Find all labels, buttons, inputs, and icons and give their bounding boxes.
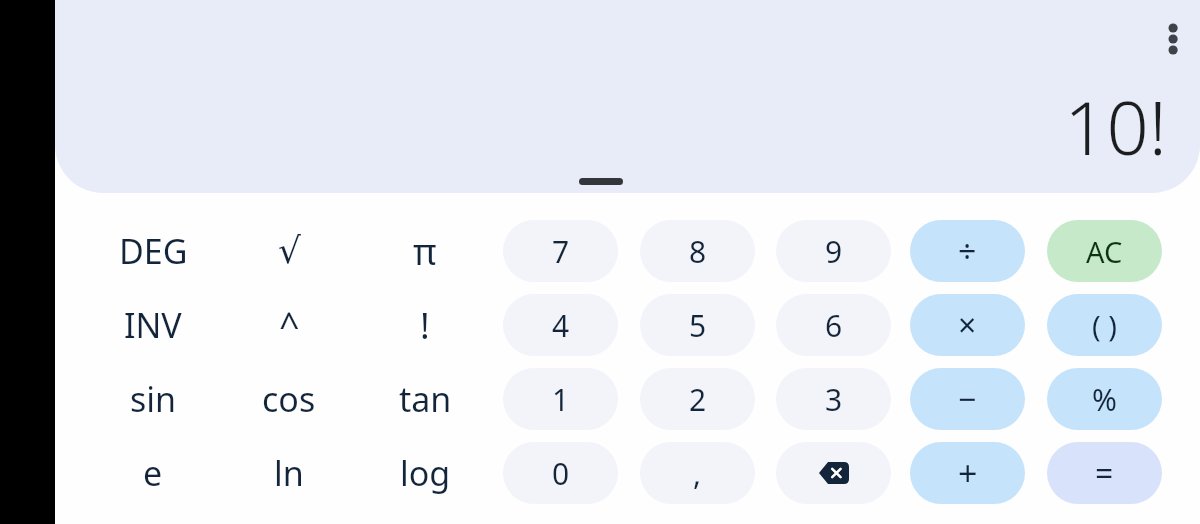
staticText: e xyxy=(143,450,163,496)
staticText: tan xyxy=(399,376,452,422)
staticText: 8 xyxy=(689,231,707,272)
button[interactable]: DEG xyxy=(96,220,210,282)
button[interactable]: tan xyxy=(368,368,482,430)
staticText: 2 xyxy=(689,379,707,420)
staticText: ln xyxy=(274,450,304,496)
staticText: % xyxy=(1092,379,1117,420)
staticText: AC xyxy=(1086,232,1123,271)
staticText: 3 xyxy=(825,379,843,420)
button[interactable]: Backspace xyxy=(776,442,891,504)
button[interactable]: INV xyxy=(96,294,210,356)
button[interactable]: = xyxy=(1047,442,1162,504)
button[interactable]: ÷ xyxy=(910,220,1025,282)
staticText: ( ) xyxy=(1092,306,1117,345)
button[interactable]: Drag handle xyxy=(579,178,623,185)
button[interactable]: sin xyxy=(96,368,210,430)
button[interactable]: ! xyxy=(368,294,482,356)
button[interactable]: 3 xyxy=(776,368,891,430)
staticText: ÷ xyxy=(958,229,977,273)
button[interactable]: √ xyxy=(232,220,346,282)
button[interactable]: , xyxy=(640,442,755,504)
button[interactable]: 6 xyxy=(776,294,891,356)
button[interactable]: 9 xyxy=(776,220,891,282)
button[interactable]: 0 xyxy=(503,442,618,504)
button[interactable]: ( ) xyxy=(1047,294,1162,356)
button[interactable]: 4 xyxy=(503,294,618,356)
button[interactable]: % xyxy=(1047,368,1162,430)
staticText: 7 xyxy=(552,231,570,272)
button[interactable]: More options xyxy=(1142,8,1198,64)
staticText: cos xyxy=(262,376,316,422)
staticText: 10! xyxy=(1064,76,1167,177)
staticText: DEG xyxy=(119,228,188,274)
button[interactable]: π xyxy=(368,220,482,282)
staticText: − xyxy=(958,377,977,421)
staticText: √ xyxy=(278,230,301,272)
button[interactable]: + xyxy=(910,442,1025,504)
button[interactable]: ^ xyxy=(232,294,346,356)
button[interactable]: e xyxy=(96,442,210,504)
staticText: , xyxy=(693,453,702,494)
button[interactable]: cos xyxy=(232,368,346,430)
staticText: + xyxy=(958,450,978,496)
button[interactable]: log xyxy=(368,442,482,504)
staticText: 0 xyxy=(552,453,570,494)
staticText: 5 xyxy=(689,305,707,346)
button[interactable]: × xyxy=(910,294,1025,356)
staticText: ! xyxy=(420,301,430,350)
staticText: = xyxy=(1095,451,1114,495)
button[interactable]: ln xyxy=(232,442,346,504)
button[interactable]: AC xyxy=(1047,220,1162,282)
staticText: π xyxy=(413,227,437,276)
staticText: INV xyxy=(124,302,182,348)
staticText: log xyxy=(400,450,451,496)
staticText: 9 xyxy=(825,231,843,272)
button[interactable]: 5 xyxy=(640,294,755,356)
staticText: 4 xyxy=(552,305,570,346)
button[interactable]: 1 xyxy=(503,368,618,430)
button[interactable]: − xyxy=(910,368,1025,430)
staticText: ^ xyxy=(279,301,300,350)
button[interactable]: 8 xyxy=(640,220,755,282)
staticText: × xyxy=(958,303,977,347)
staticText: sin xyxy=(130,376,177,422)
button[interactable]: 2 xyxy=(640,368,755,430)
staticText: 1 xyxy=(552,379,570,420)
staticText: 6 xyxy=(825,305,843,346)
button[interactable]: 7 xyxy=(503,220,618,282)
